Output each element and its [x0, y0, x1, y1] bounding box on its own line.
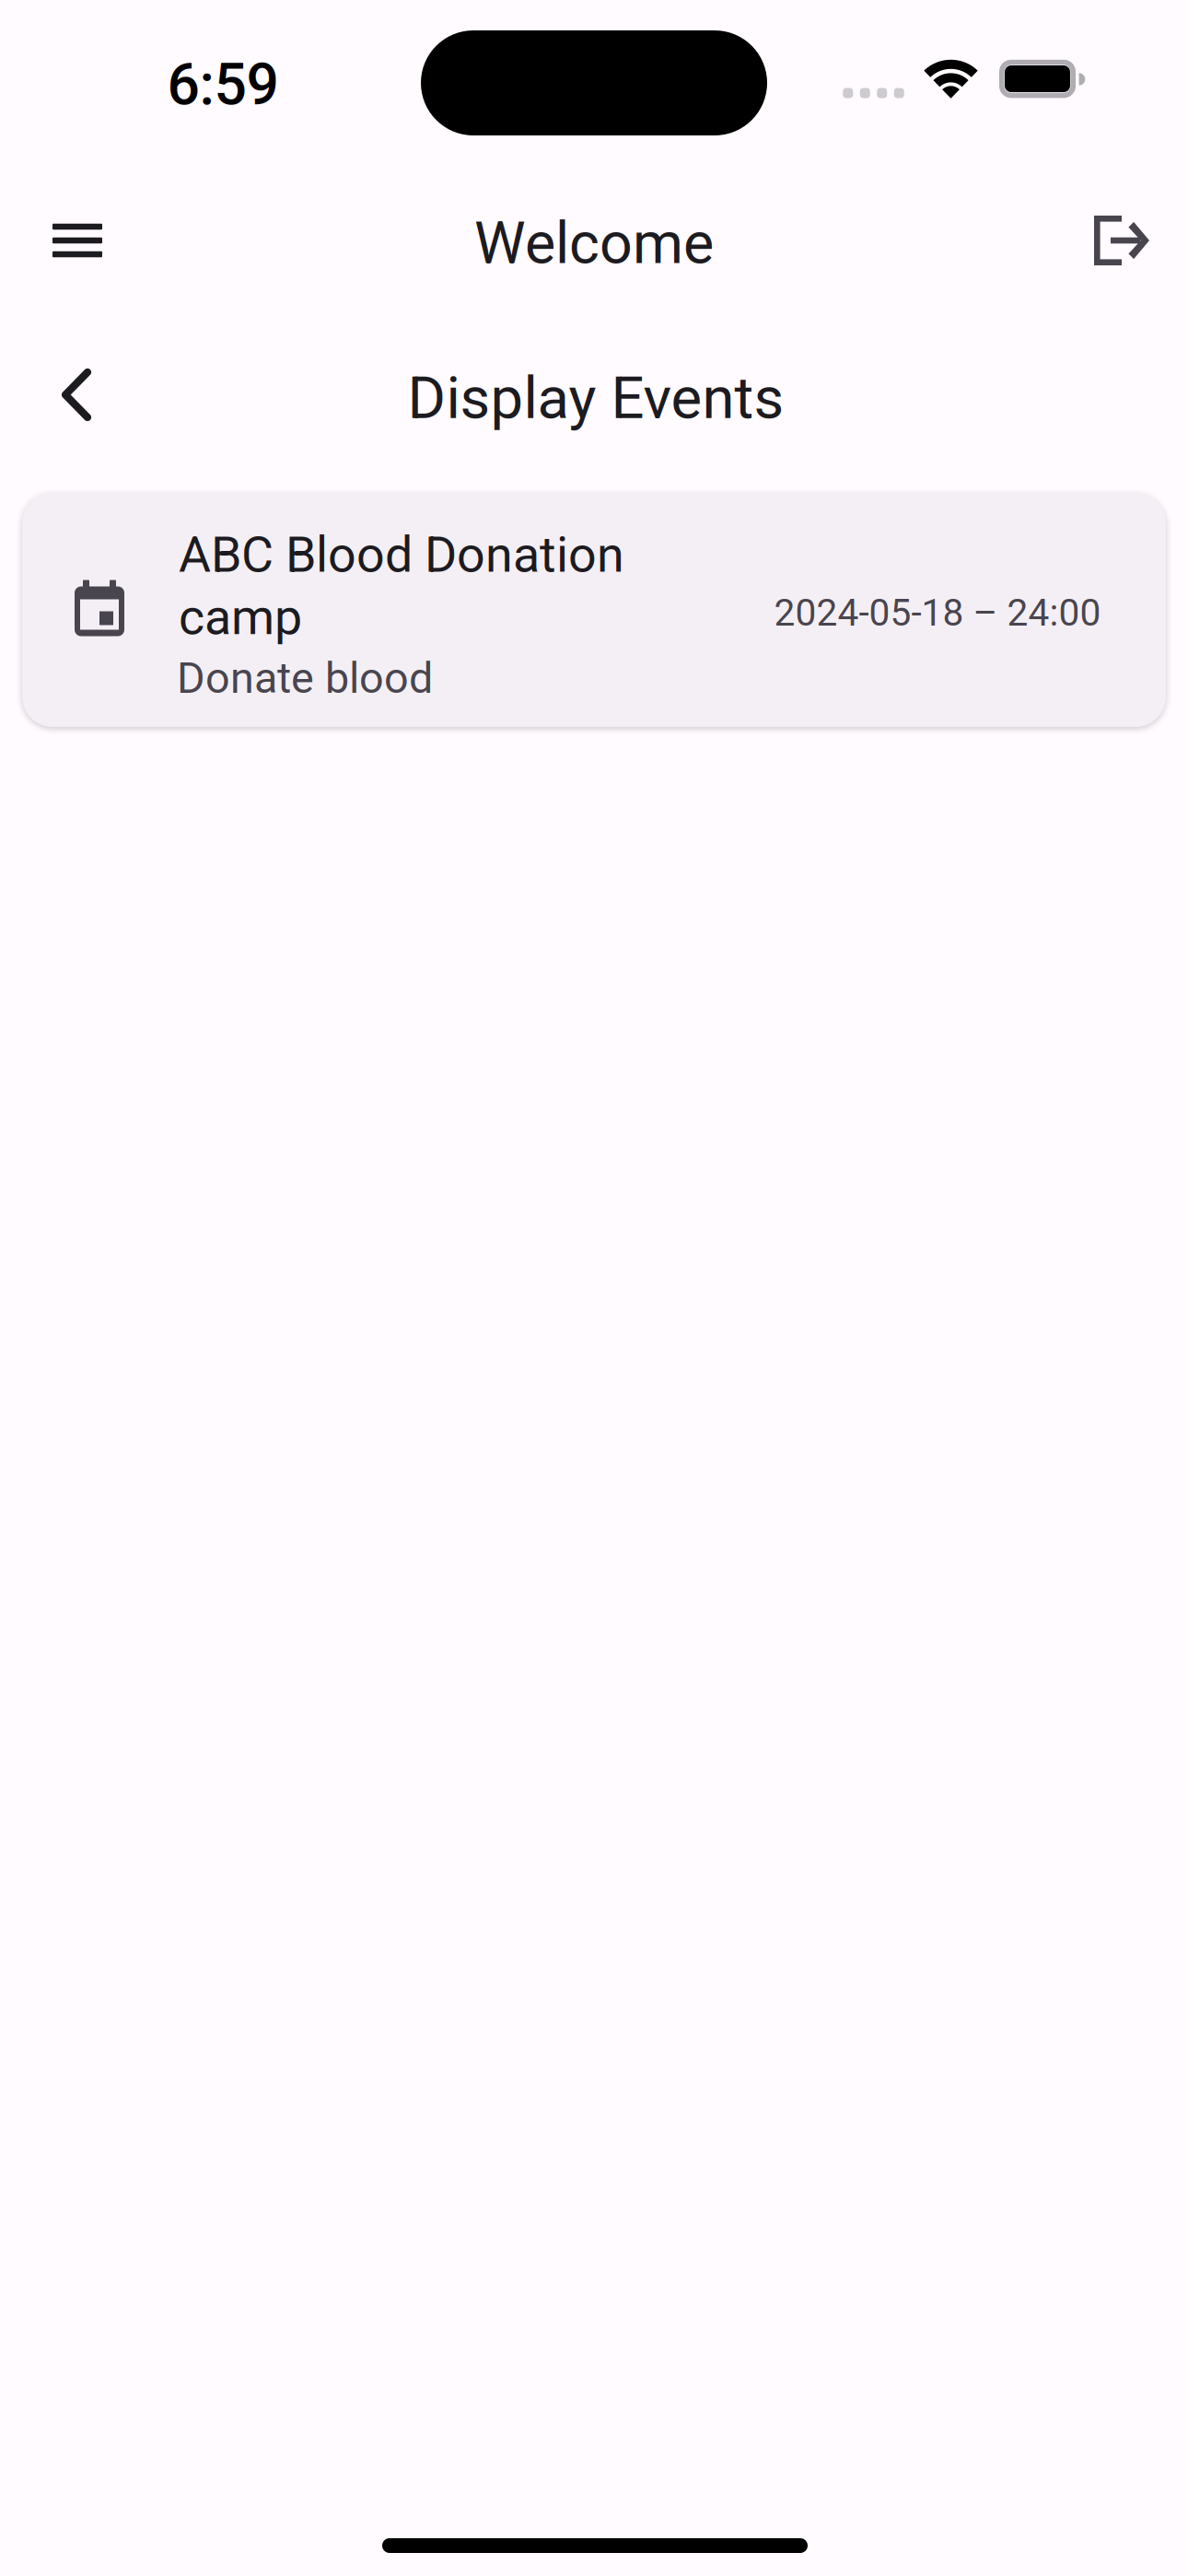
- button[interactable]: Log out: [1066, 185, 1177, 296]
- button[interactable]: Back: [22, 340, 132, 450]
- button[interactable]: Open navigation menu: [22, 185, 133, 296]
- staticText: Welcome: [474, 209, 714, 277]
- button[interactable]: ABC Blood Donation camp: [22, 493, 1166, 727]
- staticText: Display Events: [408, 364, 784, 432]
- staticText: Donate blood: [177, 653, 433, 703]
- staticText: 6:59: [167, 51, 279, 118]
- staticText: ABC Blood Donation camp: [179, 526, 624, 646]
- staticText: 2024-05-18 – 24:00: [774, 591, 1101, 635]
